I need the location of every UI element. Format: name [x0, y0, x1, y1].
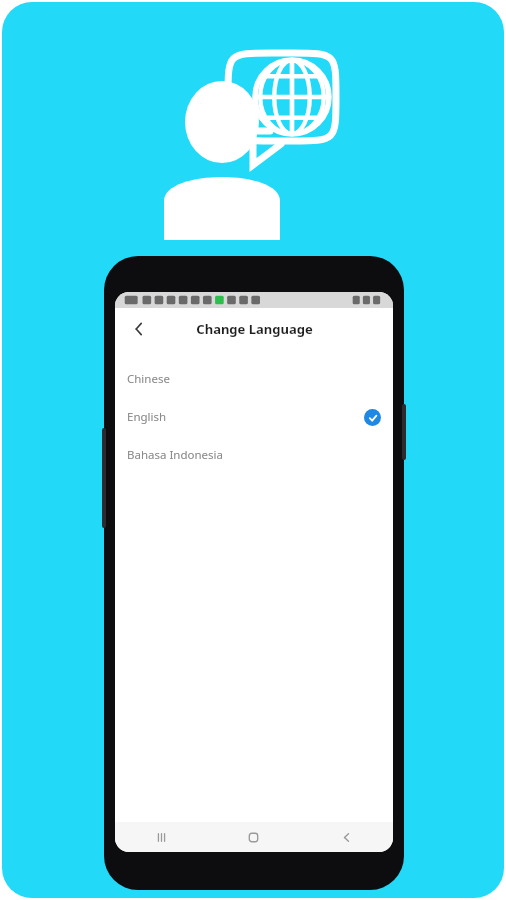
other: Selected	[364, 409, 381, 426]
staticText: Bahasa Indonesia	[127, 447, 223, 463]
staticText: Change Language	[196, 320, 313, 338]
staticText: Chinese	[127, 371, 170, 387]
button[interactable]: Bahasa Indonesia	[115, 436, 393, 474]
button[interactable]: Chinese	[115, 360, 393, 398]
button[interactable]: Back	[300, 822, 393, 852]
button[interactable]: Recent apps	[115, 822, 207, 852]
button[interactable]: Home	[207, 822, 300, 852]
staticText: English	[127, 409, 167, 425]
button[interactable]: English	[115, 398, 393, 436]
button[interactable]: Back	[123, 313, 155, 345]
